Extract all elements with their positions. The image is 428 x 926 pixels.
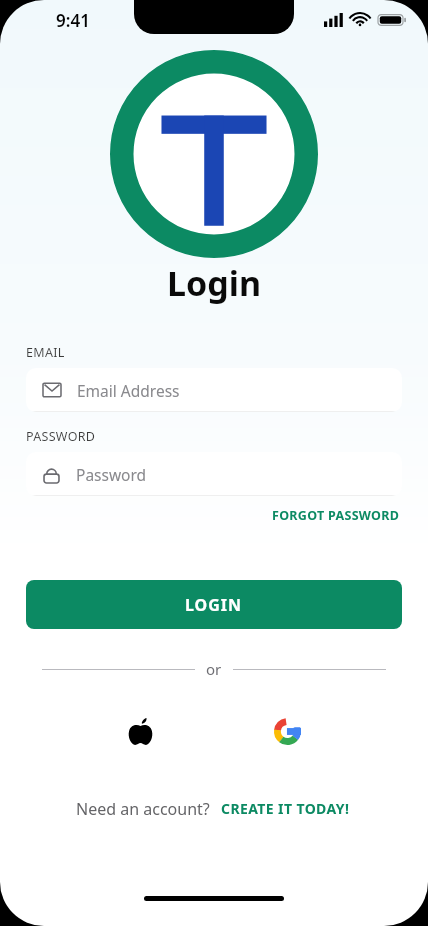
staticText: FORGOT PASSWORD	[272, 507, 400, 524]
staticText: Login	[0, 260, 428, 306]
button[interactable]: LOGIN	[26, 580, 402, 629]
button[interactable]: Email Address	[26, 368, 402, 412]
staticText: EMAIL	[26, 344, 65, 361]
button[interactable]: CREATE IT TODAY!	[219, 797, 352, 820]
staticText: Need an account?	[76, 798, 210, 820]
button[interactable]: FORGOT PASSWORD	[270, 505, 402, 526]
button[interactable]: Password	[26, 452, 402, 496]
staticText: CREATE IT TODAY!	[221, 799, 350, 818]
staticText: Password	[76, 464, 147, 485]
button[interactable]: Sign in with Apple	[67, 709, 214, 753]
staticText: or	[206, 659, 222, 679]
button[interactable]: Sign in with Google	[214, 709, 361, 753]
staticText: LOGIN	[185, 594, 243, 616]
staticText: PASSWORD	[26, 428, 96, 445]
staticText: Email Address	[77, 380, 180, 401]
staticText: 9:41	[56, 9, 90, 32]
